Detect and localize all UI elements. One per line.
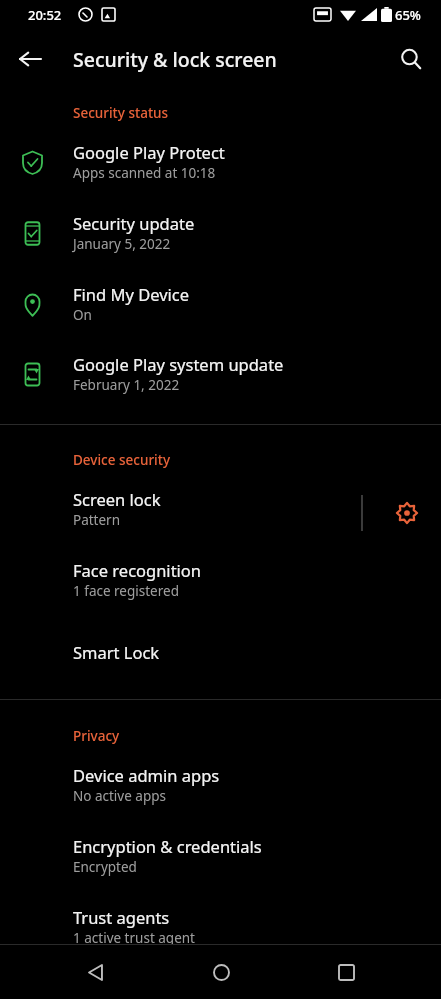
button[interactable]: Smart Lock <box>0 640 441 684</box>
staticText: Screen lock <box>73 488 161 510</box>
staticText: Security update <box>73 212 195 234</box>
button[interactable]: Back <box>8 37 52 81</box>
staticText: 1 face registered <box>73 582 179 600</box>
staticText: Google Play system update <box>73 353 284 375</box>
staticText: Smart Lock <box>73 641 160 663</box>
button[interactable]: Face recognition <box>0 558 441 618</box>
button[interactable]: Screen lock settings <box>385 491 429 535</box>
staticText: Privacy <box>73 727 120 745</box>
staticText: Device security <box>73 451 171 469</box>
button[interactable]: Back <box>68 945 122 999</box>
staticText: Trust agents <box>73 906 170 928</box>
button[interactable]: Device admin apps <box>0 763 441 823</box>
button[interactable]: Screen lock <box>0 487 441 547</box>
button[interactable]: Search <box>389 37 433 81</box>
staticText: February 1, 2022 <box>73 376 180 394</box>
staticText: Security & lock screen <box>73 46 277 73</box>
button[interactable]: Home <box>194 945 248 999</box>
staticText: Find My Device <box>73 283 190 305</box>
staticText: Device admin apps <box>73 764 220 786</box>
staticText: 65% <box>395 6 421 24</box>
staticText: 1 active trust agent <box>73 929 195 947</box>
button[interactable]: Google Play Protect <box>0 140 441 200</box>
staticText: Security status <box>73 104 169 122</box>
staticText: No active apps <box>73 787 166 805</box>
staticText: On <box>73 306 92 324</box>
staticText: Google Play Protect <box>73 141 225 163</box>
button[interactable]: Encryption & credentials <box>0 834 441 894</box>
button[interactable]: Trust agents <box>0 905 441 965</box>
button[interactable]: Find My Device <box>0 282 441 342</box>
staticText: January 5, 2022 <box>73 235 171 253</box>
staticText: 20:52 <box>28 6 62 24</box>
staticText: Encryption & credentials <box>73 835 262 857</box>
button[interactable]: Recent apps <box>319 945 373 999</box>
button[interactable]: Google Play system update <box>0 352 441 412</box>
staticText: Apps scanned at 10:18 <box>73 164 216 182</box>
button[interactable]: Security update <box>0 211 441 271</box>
staticText: Face recognition <box>73 559 202 581</box>
staticText: Encrypted <box>73 858 137 876</box>
staticText: Pattern <box>73 511 121 529</box>
